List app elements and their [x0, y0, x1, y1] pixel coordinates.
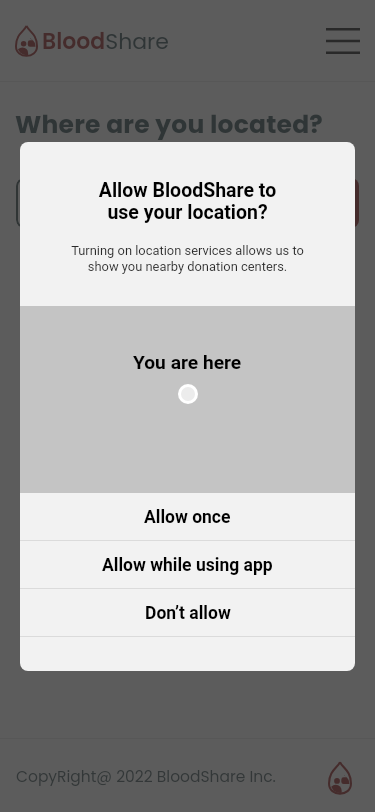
button[interactable]: BloodShare	[15, 25, 169, 57]
button[interactable]: Menu	[321, 19, 365, 63]
staticText: Enter your city	[32, 193, 131, 213]
staticText: BloodShare	[42, 26, 169, 57]
staticText: CopyRight@ 2022 BloodShare Inc.	[16, 766, 276, 788]
button[interactable]: Allow once	[20, 493, 355, 540]
button[interactable]: Search	[263, 178, 359, 228]
staticText: Where are you located?	[15, 107, 323, 142]
staticText: Allow once	[144, 507, 231, 528]
button[interactable]: Allow while using app	[20, 541, 355, 588]
staticText: You are here	[133, 351, 242, 374]
staticText: Turning on location services allows us t…	[20, 243, 355, 274]
button[interactable]: Don’t allow	[20, 589, 355, 636]
staticText: Don’t allow	[145, 603, 231, 624]
staticText: Allow BloodShare to use your location?	[20, 179, 355, 224]
button[interactable]: Enter your city	[16, 178, 253, 228]
staticText: Allow while using app	[102, 555, 273, 576]
